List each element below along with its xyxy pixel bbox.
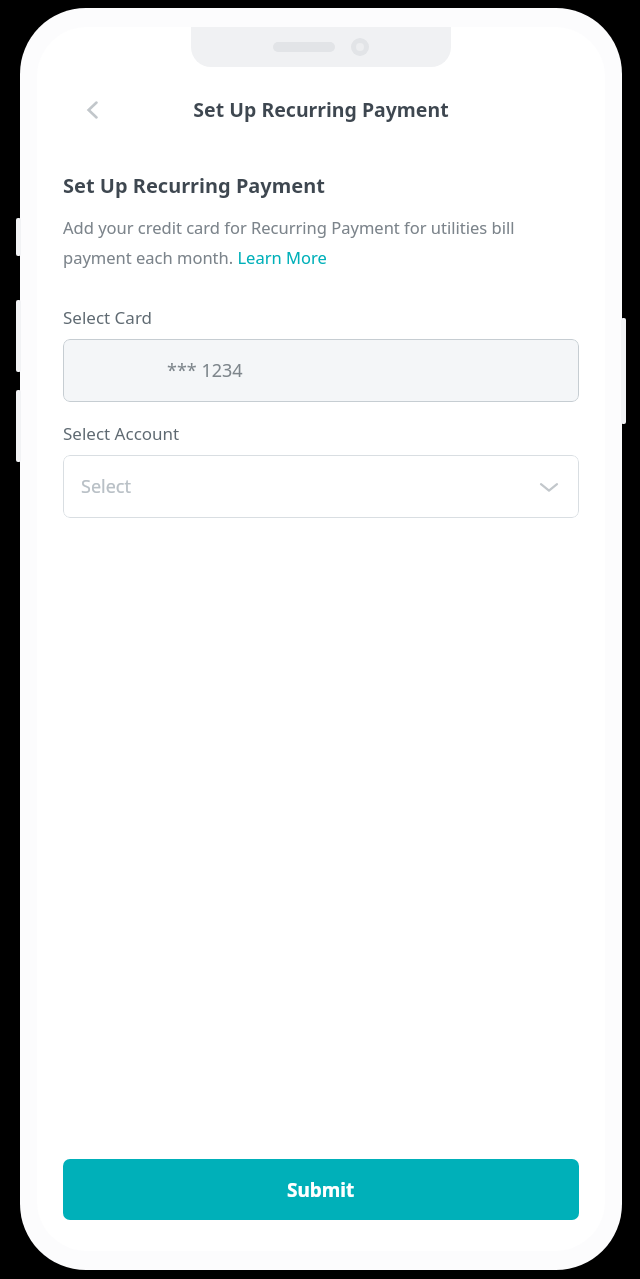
staticText: Submit [287,1177,355,1203]
staticText: Select Card [63,306,153,329]
staticText: Set Up Recurring Payment [63,172,325,199]
staticText: *** 1234 [167,358,243,383]
staticText: Add your credit card for Recurring Payme… [63,216,579,268]
staticText: Set Up Recurring Payment [37,96,605,123]
button[interactable]: Submit [63,1159,579,1220]
button[interactable]: Back [69,86,117,134]
staticText: Select [81,474,131,499]
staticText: Select Account [63,422,180,445]
button[interactable]: *** 1234 [63,339,579,402]
button[interactable]: Select [63,455,579,518]
